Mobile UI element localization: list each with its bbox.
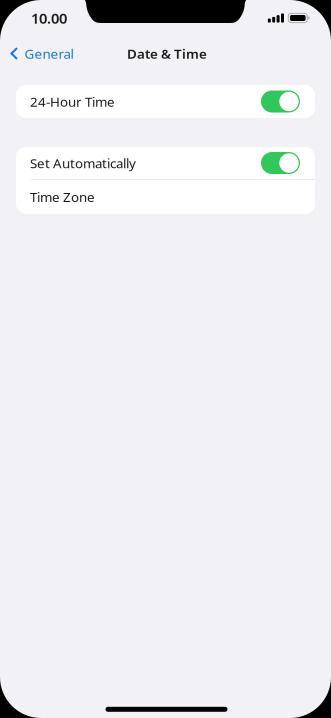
- staticText: General: [24, 45, 73, 62]
- button[interactable]: Time Zone: [16, 180, 315, 214]
- staticText: Time Zone: [30, 188, 95, 206]
- staticText: 10.00: [31, 8, 67, 28]
- staticText: Date & Time: [127, 45, 207, 62]
- staticText: Set Automatically: [30, 154, 136, 172]
- button[interactable]: 24-Hour Time: [16, 85, 315, 118]
- staticText: 24-Hour Time: [30, 93, 115, 110]
- button[interactable]: Set Automatically: [16, 147, 315, 179]
- button[interactable]: General: [0, 39, 83, 68]
